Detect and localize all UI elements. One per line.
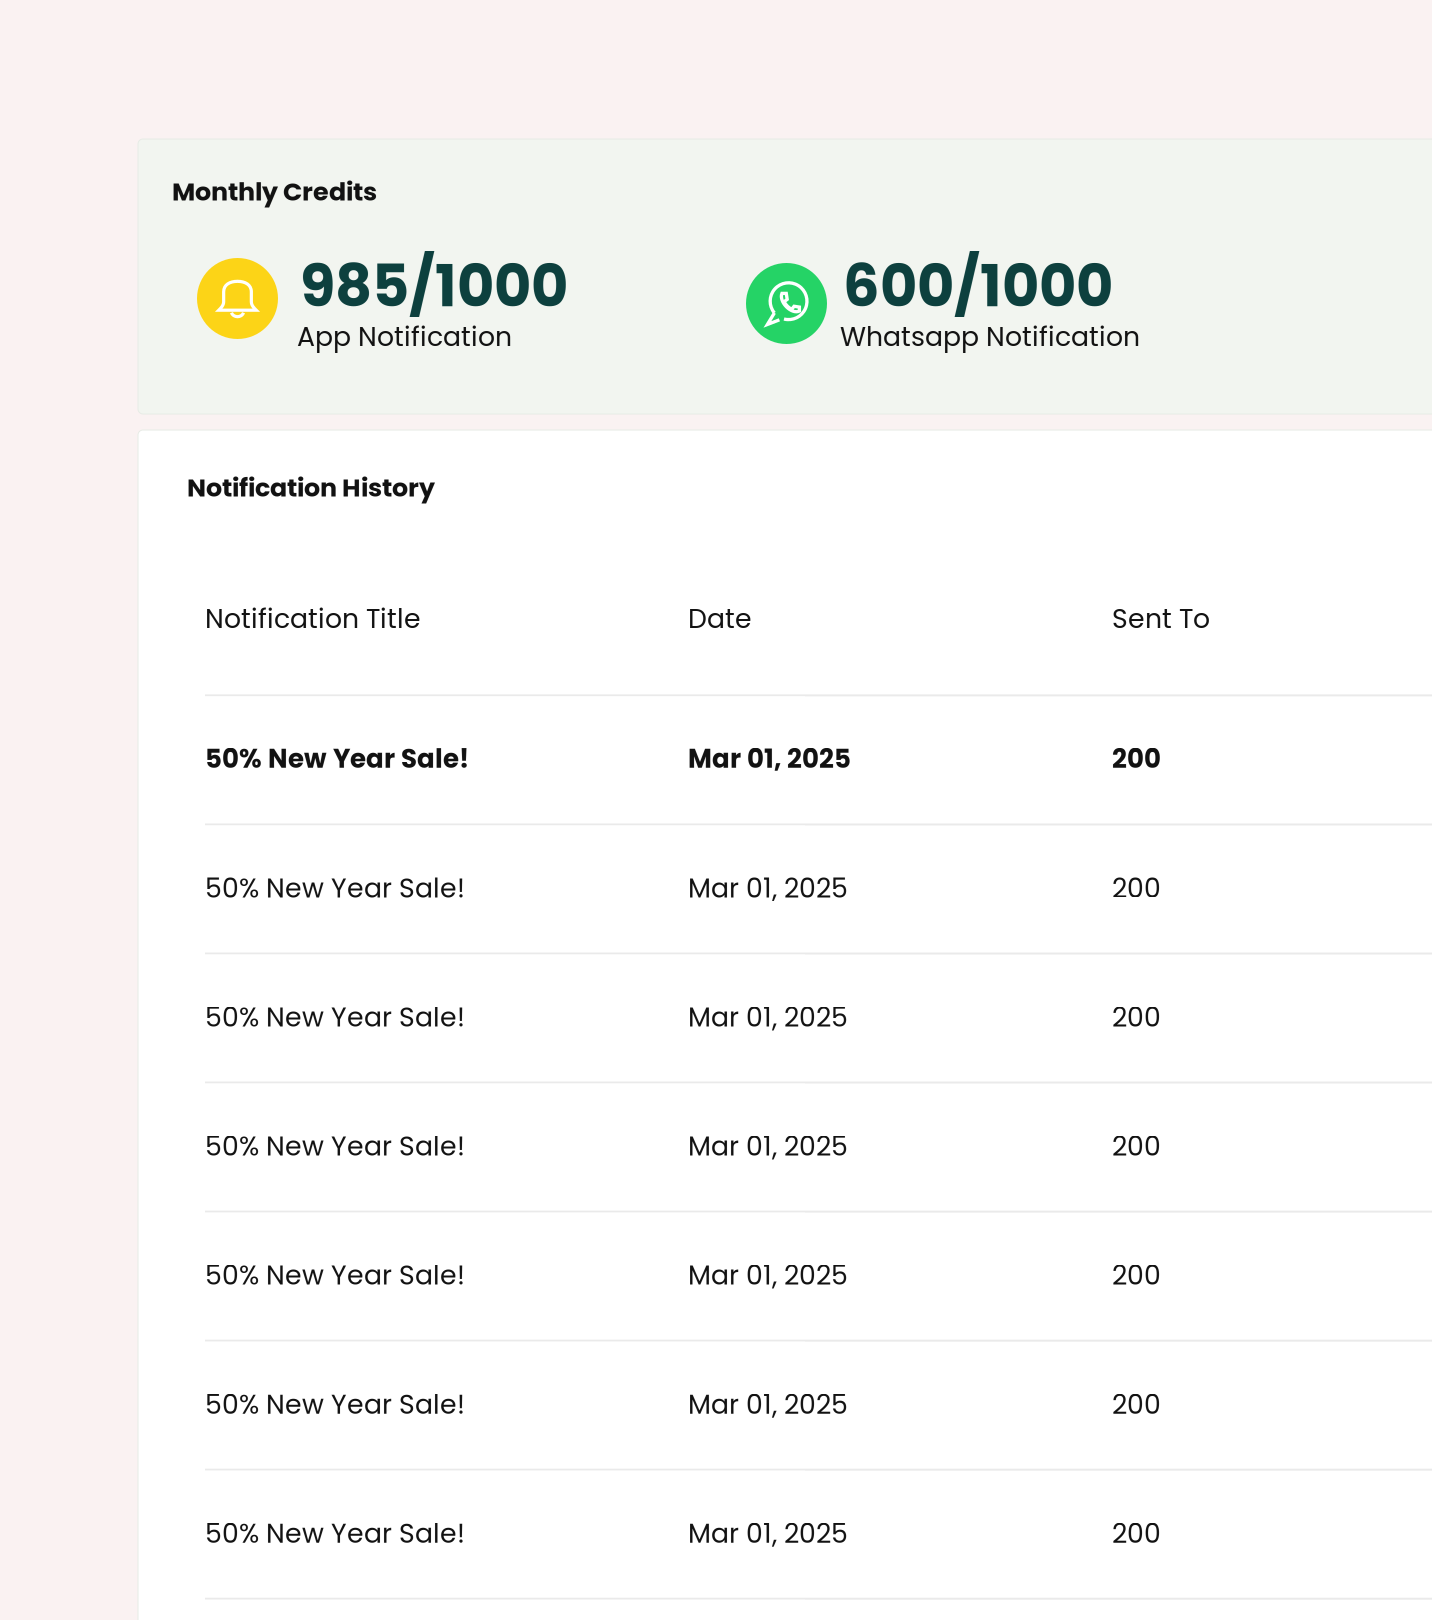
staticText: 50% New Year Sale! xyxy=(205,1386,465,1423)
staticText: 50% New Year Sale! xyxy=(205,998,465,1036)
staticText: 200 xyxy=(1112,740,1161,777)
staticText: App Notification xyxy=(297,318,512,355)
staticText: 50% New Year Sale! xyxy=(205,1515,465,1552)
staticText: Mar 01, 2025 xyxy=(688,1386,848,1423)
staticText: 200 xyxy=(1112,1386,1161,1423)
staticText: Whatsapp Notification xyxy=(840,318,1140,355)
button[interactable]: Whatsapp Notification credits, 600 of 10… xyxy=(746,253,1146,344)
staticText: 600/1000 xyxy=(843,246,1113,326)
button[interactable]: 50% New Year Sale! xyxy=(138,954,805,1084)
staticText: Monthly Credits xyxy=(172,174,377,209)
staticText: Notification History xyxy=(187,470,435,505)
button[interactable]: App Notification credits, 985 of 1000 xyxy=(197,253,577,344)
staticText: Mar 01, 2025 xyxy=(688,740,851,777)
staticText: Sent To xyxy=(1112,600,1210,637)
staticText: Mar 01, 2025 xyxy=(688,998,848,1036)
staticText: 50% New Year Sale! xyxy=(205,869,465,907)
staticText: 200 xyxy=(1112,869,1161,907)
button[interactable]: 50% New Year Sale! xyxy=(138,1471,805,1600)
staticText: 50% New Year Sale! xyxy=(205,1257,465,1294)
staticText: Mar 01, 2025 xyxy=(688,869,848,907)
staticText: 985/1000 xyxy=(300,246,568,326)
button[interactable]: 50% New Year Sale! xyxy=(138,1213,805,1342)
staticText: 200 xyxy=(1112,1515,1161,1552)
button[interactable]: 50% New Year Sale! xyxy=(138,1083,805,1213)
staticText: 200 xyxy=(1112,1257,1161,1294)
staticText: Mar 01, 2025 xyxy=(688,1515,848,1552)
button[interactable]: 50% New Year Sale! xyxy=(138,1342,805,1471)
staticText: 50% New Year Sale! xyxy=(205,1127,465,1165)
staticText: 200 xyxy=(1112,1127,1161,1165)
button[interactable]: 50% New Year Sale! xyxy=(138,825,805,955)
staticText: Date xyxy=(688,600,752,637)
staticText: 50% New Year Sale! xyxy=(205,740,469,777)
staticText: Mar 01, 2025 xyxy=(688,1127,848,1165)
button[interactable]: 50% New Year Sale! xyxy=(138,696,805,825)
staticText: 200 xyxy=(1112,998,1161,1036)
staticText: Notification Title xyxy=(205,600,421,637)
staticText: Mar 01, 2025 xyxy=(688,1257,848,1294)
